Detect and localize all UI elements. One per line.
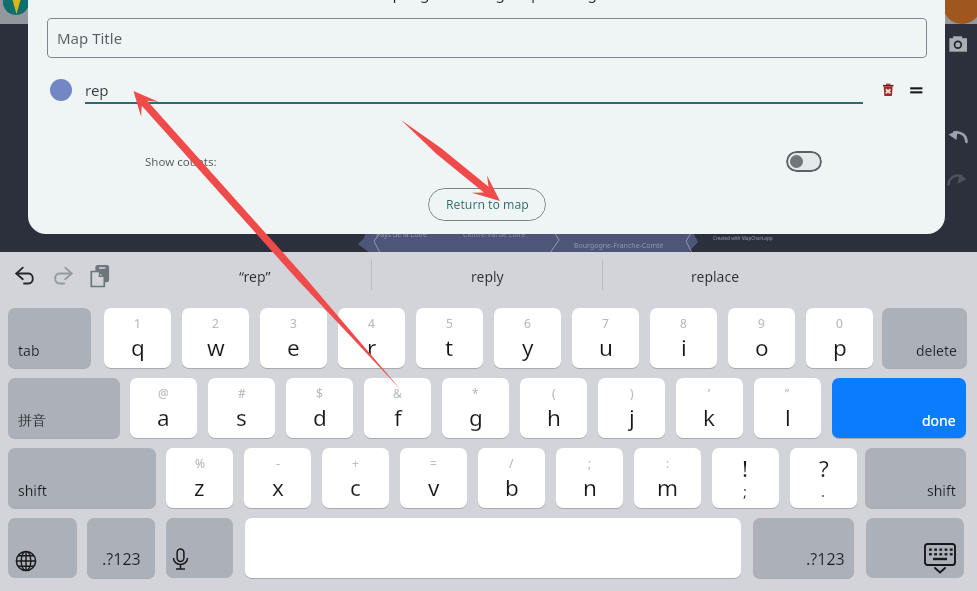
button[interactable]: = (400, 448, 467, 508)
button[interactable]: ; (556, 448, 623, 508)
staticText: % (195, 455, 205, 471)
staticText: 9 (758, 315, 765, 331)
button[interactable]: ! (712, 448, 779, 508)
staticText: done (922, 411, 956, 430)
button[interactable]: done (832, 378, 966, 438)
staticText: : (666, 455, 670, 471)
staticText: b (505, 472, 519, 503)
button[interactable]: 0 (806, 308, 873, 368)
button[interactable]: * (442, 378, 509, 438)
staticText: Bourgogne-Franche-Comté (574, 241, 664, 251)
staticText: p (833, 332, 847, 363)
staticText: . (821, 481, 826, 501)
button[interactable]: Delete (878, 80, 900, 102)
staticText: d (313, 402, 327, 433)
staticText: delete (916, 341, 957, 360)
staticText: k (703, 402, 716, 433)
staticText: 7 (602, 315, 609, 331)
staticText: Centre-Val de Loire (463, 230, 526, 240)
button[interactable]: “rep” (140, 264, 370, 288)
button[interactable]: Return to map (428, 188, 546, 221)
button[interactable]: ) (598, 378, 665, 438)
button[interactable]: Map Title (47, 18, 927, 58)
staticText: Map legend and group settings (369, 0, 605, 4)
staticText: 5 (446, 315, 453, 331)
button[interactable]: Hide keyboard (866, 518, 964, 578)
button[interactable]: Reorder (908, 82, 926, 100)
button[interactable]: @ (130, 378, 197, 438)
button[interactable]: & (364, 378, 431, 438)
staticText: s (236, 402, 247, 433)
staticText: # (238, 385, 246, 401)
button[interactable]: $ (286, 378, 353, 438)
button[interactable]: .?123 (753, 518, 854, 578)
staticText: t (445, 332, 454, 363)
button[interactable]: 5 (416, 308, 483, 368)
staticText: shift (927, 481, 956, 500)
button[interactable]: ? (790, 448, 857, 508)
staticText: 1 (134, 315, 141, 331)
button[interactable]: tab (8, 308, 91, 368)
button[interactable]: # (208, 378, 275, 438)
staticText: + (352, 455, 359, 471)
staticText: replace (691, 267, 740, 286)
staticText: m (657, 472, 679, 503)
staticText: 0 (836, 315, 843, 331)
button[interactable]: 3 (260, 308, 327, 368)
button[interactable]: reply (372, 264, 602, 288)
staticText: w (207, 332, 225, 363)
button[interactable]: ’ (676, 378, 743, 438)
button[interactable]: replace (603, 264, 828, 288)
staticText: l (785, 402, 791, 433)
staticText: & (393, 385, 402, 401)
button[interactable]: ” (754, 378, 821, 438)
button[interactable]: Redo (948, 173, 970, 189)
staticText: ? (819, 453, 829, 484)
staticText: ) (630, 385, 634, 401)
staticText: reply (471, 267, 504, 286)
button[interactable]: Undo (948, 130, 970, 146)
button[interactable]: 9 (728, 308, 795, 368)
staticText: e (287, 332, 300, 363)
button[interactable]: 1 (104, 308, 171, 368)
button[interactable]: 7 (572, 308, 639, 368)
button[interactable]: 拼音 (8, 378, 120, 438)
button[interactable]: rep (85, 78, 863, 104)
staticText: 4 (368, 315, 375, 331)
staticText: - (276, 455, 280, 471)
button[interactable]: shift (8, 448, 156, 508)
staticText: tab (18, 341, 40, 360)
button[interactable]: Camera (946, 30, 977, 56)
staticText: ; (588, 455, 592, 471)
button[interactable]: shift (865, 448, 966, 508)
staticText: c (350, 472, 361, 503)
button[interactable]: 8 (650, 308, 717, 368)
staticText: .?123 (102, 548, 141, 570)
staticText: h (547, 402, 561, 433)
button[interactable]: : (634, 448, 701, 508)
button[interactable]: Pick colour (50, 79, 72, 101)
button[interactable]: 4 (338, 308, 405, 368)
button[interactable]: Paste (89, 262, 111, 290)
button[interactable]: + (322, 448, 389, 508)
button[interactable]: Show counts toggle (786, 151, 822, 172)
staticText: z (194, 472, 205, 503)
button[interactable]: % (166, 448, 233, 508)
button[interactable]: Voice input (166, 518, 233, 578)
staticText: v (428, 472, 440, 503)
button[interactable]: / (478, 448, 545, 508)
staticText: Pays de la Loire (376, 230, 427, 240)
button[interactable]: delete (882, 308, 967, 368)
staticText: ! (742, 453, 749, 484)
button[interactable]: Undo typing (12, 262, 38, 290)
staticText: ” (785, 385, 790, 401)
button[interactable]: ( (520, 378, 587, 438)
button[interactable]: .?123 (87, 518, 155, 578)
button[interactable]: - (244, 448, 311, 508)
button[interactable]: Redo typing (50, 262, 76, 290)
button[interactable]: 6 (494, 308, 561, 368)
button[interactable]: Change language (8, 518, 77, 578)
staticText: u (599, 332, 613, 363)
button[interactable]: 2 (182, 308, 249, 368)
